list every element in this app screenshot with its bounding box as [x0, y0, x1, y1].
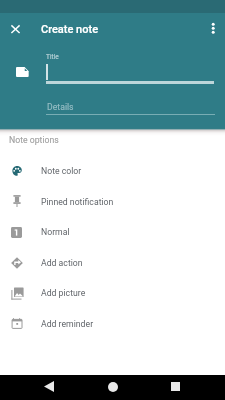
staticText: Add reminder	[41, 319, 94, 329]
button[interactable]: Home	[82, 374, 143, 399]
button[interactable]: Pinned notification	[0, 187, 225, 217]
button[interactable]: Add action	[0, 248, 225, 278]
button[interactable]: Back	[18, 374, 79, 399]
button[interactable]: Note color	[0, 156, 225, 186]
button[interactable]: Normal	[0, 217, 225, 247]
button[interactable]: Close	[8, 22, 23, 37]
button[interactable]: Add reminder	[0, 309, 225, 339]
button[interactable]: Add picture	[0, 278, 225, 308]
staticText: Add action	[41, 258, 83, 268]
staticText: Normal	[41, 227, 70, 237]
staticText: Details	[47, 102, 74, 112]
staticText: Title	[46, 53, 59, 61]
staticText: Note color	[41, 166, 82, 176]
button[interactable]: Recents	[145, 374, 206, 399]
staticText: Note options	[9, 135, 59, 145]
button[interactable]: More options	[206, 21, 220, 35]
staticText: Create note	[41, 23, 99, 36]
staticText: Pinned notification	[41, 197, 114, 207]
staticText: Add picture	[41, 288, 86, 298]
